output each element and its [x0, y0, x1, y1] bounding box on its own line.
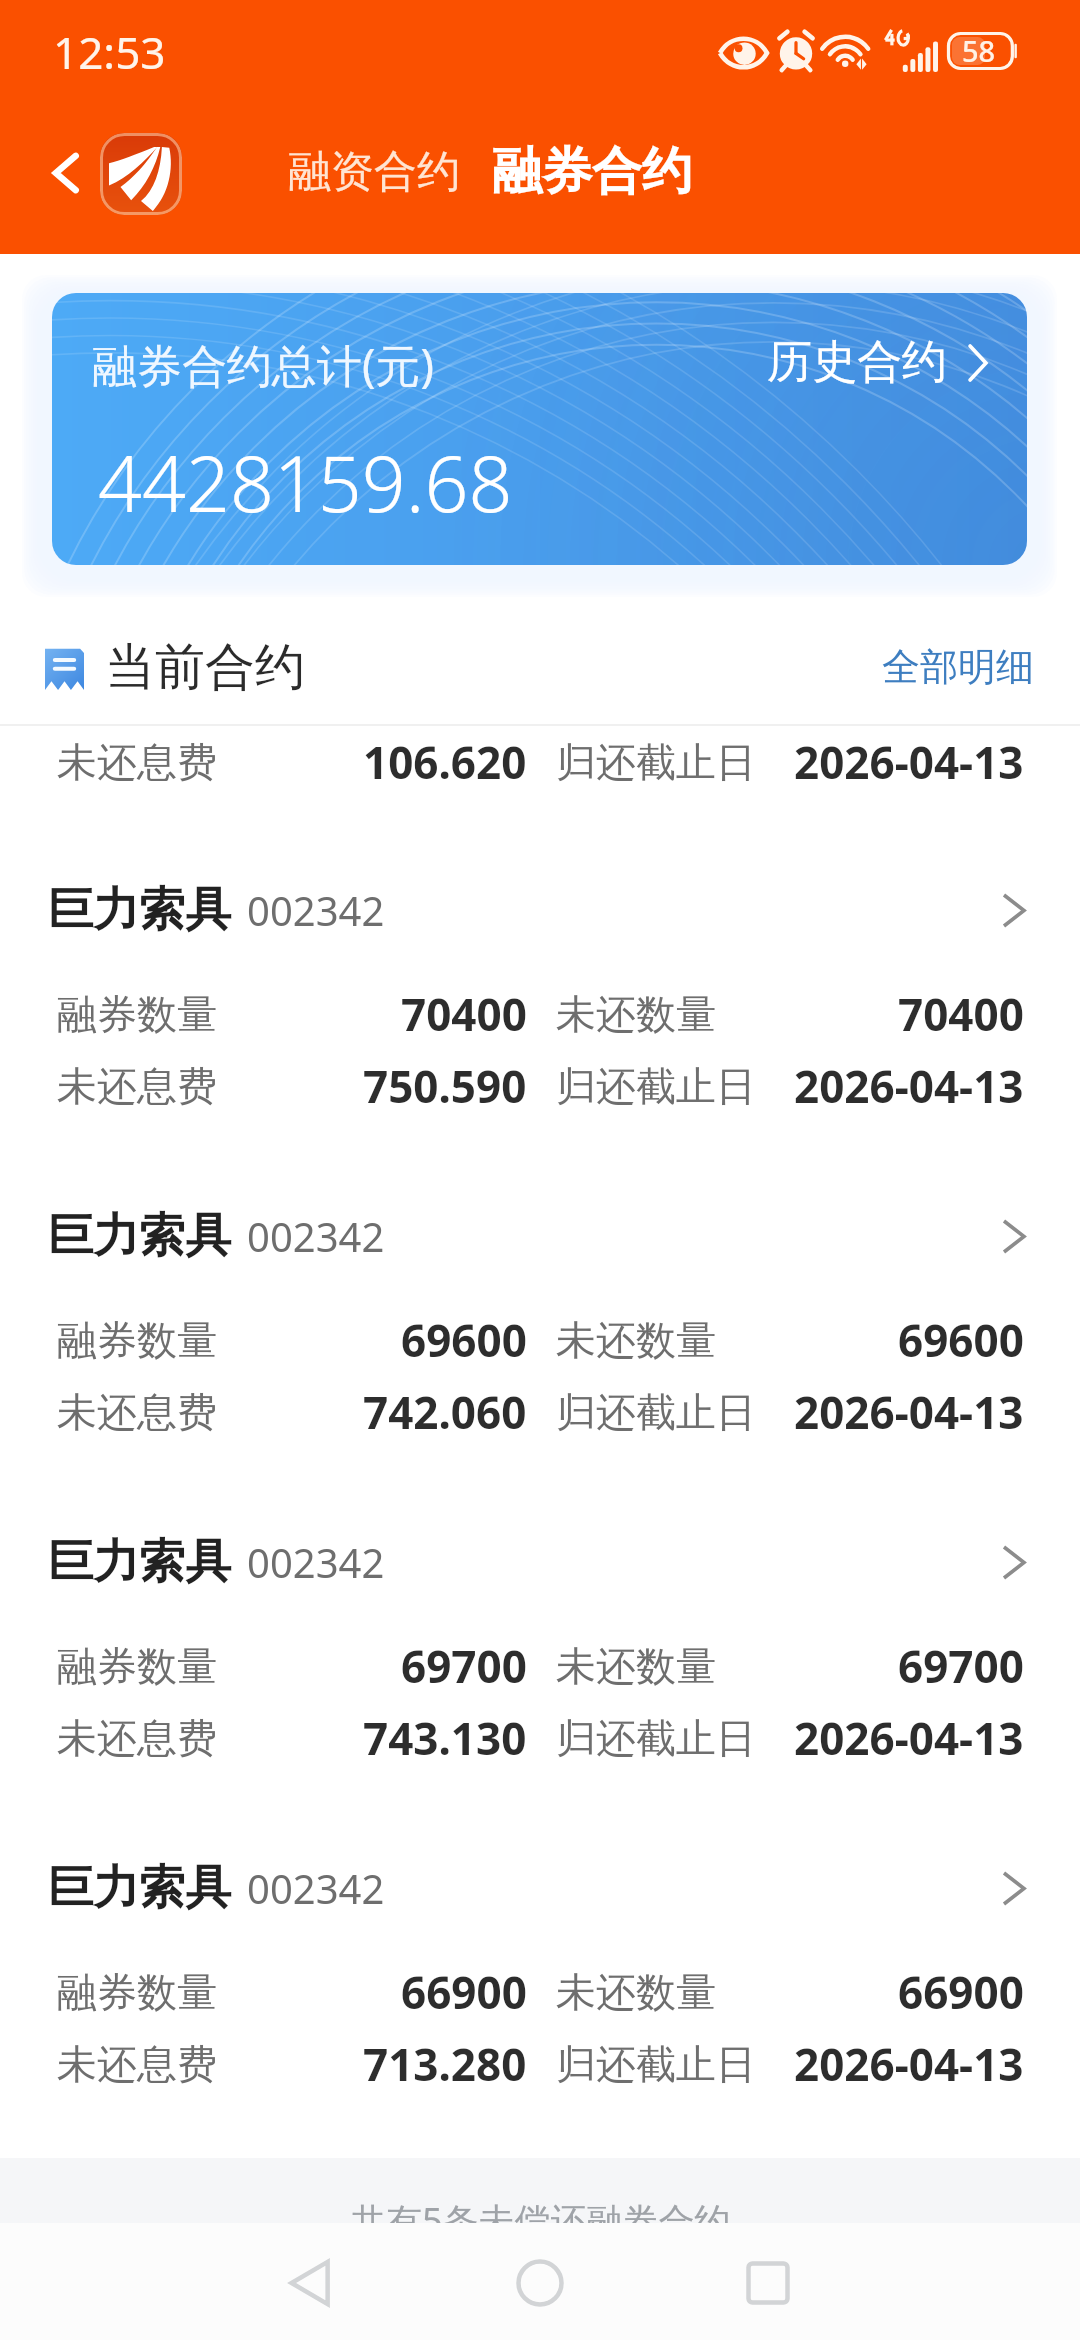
- staticText: 融券数量: [57, 1315, 217, 1365]
- button[interactable]: 融券合约总计(元): [52, 293, 1027, 565]
- button[interactable]: App logo: [100, 133, 182, 215]
- staticText: 69600: [401, 1310, 527, 1370]
- staticText: 全部明细: [882, 643, 1034, 691]
- staticText: 750.590: [363, 1056, 527, 1116]
- staticText: 巨力索具: [47, 1859, 231, 1917]
- staticText: 未还息费: [57, 2039, 217, 2089]
- button[interactable]: 巨力索具: [0, 1190, 1080, 1440]
- staticText: 002342: [247, 1861, 385, 1915]
- staticText: 002342: [247, 883, 385, 937]
- button[interactable]: Back: [22, 128, 112, 218]
- staticText: 69700: [898, 1636, 1024, 1696]
- button[interactable]: 巨力索具: [0, 864, 1080, 1114]
- staticText: 未还息费: [57, 1713, 217, 1763]
- staticText: 未还数量: [556, 1641, 716, 1691]
- staticText: 融券合约总计(元): [92, 334, 435, 395]
- staticText: 融券数量: [57, 1641, 217, 1691]
- staticText: 70400: [401, 984, 527, 1044]
- staticText: 12:53: [53, 22, 166, 82]
- staticText: 融券数量: [57, 989, 217, 1039]
- staticText: 002342: [247, 1535, 385, 1589]
- staticText: 713.280: [363, 2034, 527, 2094]
- staticText: 巨力索具: [47, 881, 231, 939]
- staticText: 66900: [898, 1962, 1024, 2022]
- staticText: 归还截止日: [556, 1387, 756, 1437]
- staticText: 巨力索具: [47, 1207, 231, 1265]
- button[interactable]: 融券合约: [492, 140, 692, 203]
- staticText: 4428159.68: [98, 430, 513, 535]
- staticText: 归还截止日: [556, 1061, 756, 1111]
- staticText: 2026-04-13: [794, 1708, 1024, 1768]
- staticText: 融券合约: [492, 140, 692, 203]
- staticText: 历史合约: [767, 334, 947, 391]
- staticText: 2026-04-13: [794, 1382, 1024, 1442]
- staticText: 69700: [401, 1636, 527, 1696]
- staticText: 743.130: [363, 1708, 527, 1768]
- staticText: 106.620: [363, 732, 527, 792]
- button[interactable]: Home: [507, 2250, 573, 2316]
- staticText: 未还数量: [556, 989, 716, 1039]
- staticText: 2026-04-13: [794, 2034, 1024, 2094]
- staticText: 融资合约: [288, 145, 460, 199]
- staticText: 归还截止日: [556, 1713, 756, 1763]
- staticText: 未还数量: [556, 1967, 716, 2017]
- staticText: 70400: [898, 984, 1024, 1044]
- staticText: 2026-04-13: [794, 1056, 1024, 1116]
- staticText: 巨力索具: [47, 1533, 231, 1591]
- button[interactable]: Back: [277, 2250, 343, 2316]
- staticText: 未还息费: [57, 737, 217, 787]
- staticText: 未还息费: [57, 1061, 217, 1111]
- button[interactable]: 融资合约: [288, 145, 460, 199]
- staticText: 2026-04-13: [794, 732, 1024, 792]
- staticText: 归还截止日: [556, 737, 756, 787]
- button[interactable]: Recents: [735, 2250, 801, 2316]
- staticText: 742.060: [363, 1382, 527, 1442]
- button[interactable]: 巨力索具: [0, 1842, 1080, 2092]
- button[interactable]: 全部明细: [874, 635, 1042, 699]
- button[interactable]: 巨力索具: [0, 1516, 1080, 1766]
- staticText: 归还截止日: [556, 2039, 756, 2089]
- staticText: 未还数量: [556, 1315, 716, 1365]
- staticText: 002342: [247, 1209, 385, 1263]
- staticText: 共有5条未偿还融券合约: [350, 2196, 731, 2223]
- staticText: 58: [962, 31, 996, 69]
- staticText: 当前合约: [105, 636, 305, 699]
- staticText: 未还息费: [57, 1387, 217, 1437]
- staticText: 融券数量: [57, 1967, 217, 2017]
- staticText: 66900: [401, 1962, 527, 2022]
- staticText: 69600: [898, 1310, 1024, 1370]
